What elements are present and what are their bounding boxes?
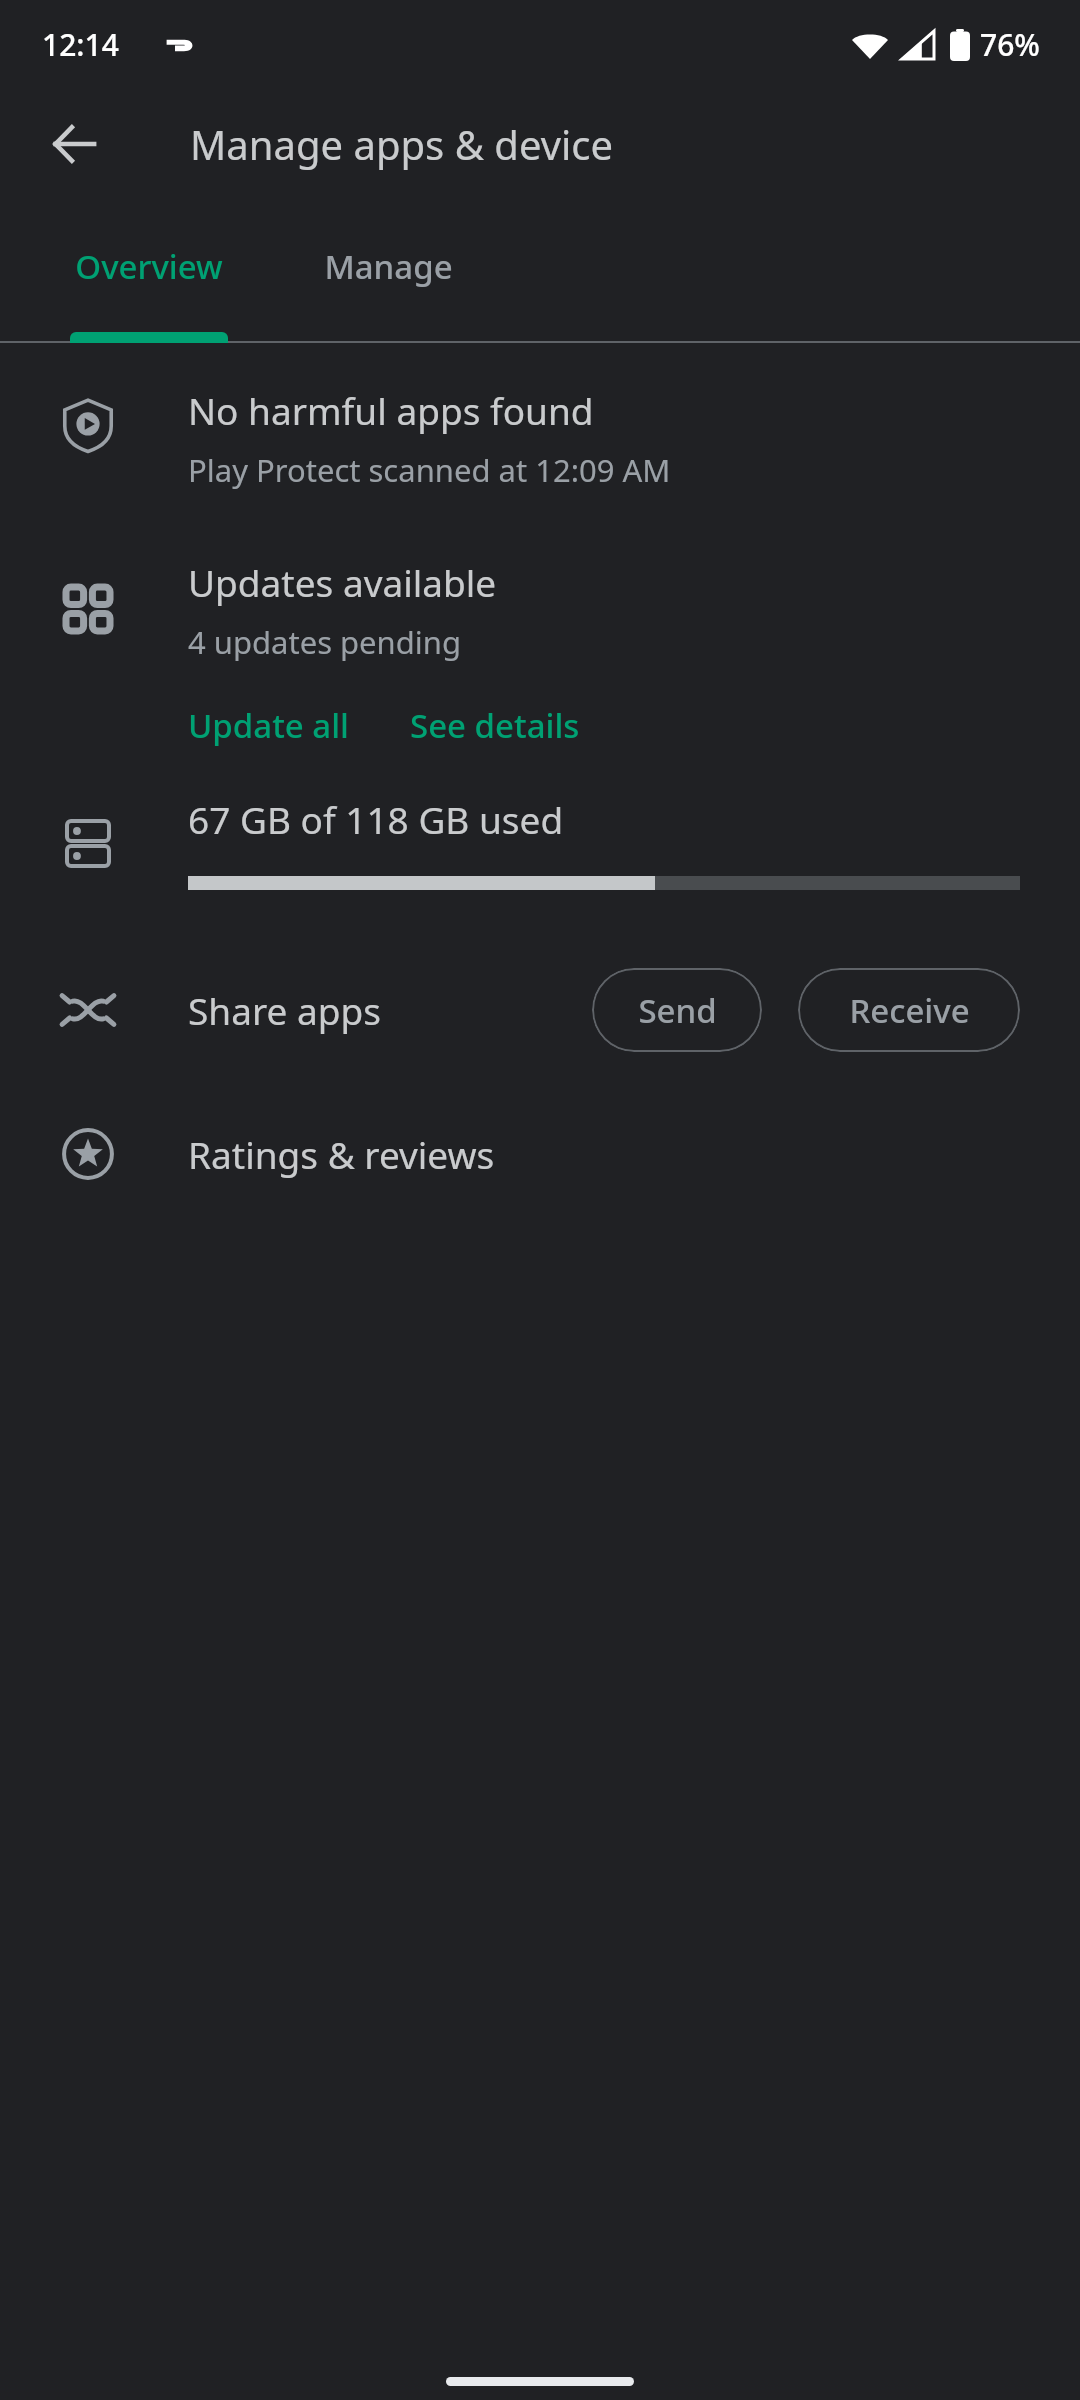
button[interactable]: 67 GB of 118 GB used <box>0 794 1080 890</box>
staticText: 76% <box>980 24 1040 65</box>
button[interactable]: Manage <box>278 200 498 332</box>
staticText: Share apps <box>188 985 381 1035</box>
staticText: Update all <box>188 703 350 748</box>
staticText: Overview <box>75 244 223 289</box>
staticText: Manage apps & device <box>190 117 614 171</box>
button[interactable]: Ratings & reviews <box>0 1114 1080 1194</box>
staticText: 4 updates pending <box>188 621 462 663</box>
staticText: Ratings & reviews <box>188 1129 495 1179</box>
button[interactable]: Back <box>26 96 122 192</box>
button[interactable]: Overview <box>20 200 278 332</box>
staticText: 12:14 <box>42 24 119 65</box>
staticText: Manage <box>324 244 453 289</box>
staticText: Receive <box>849 988 970 1033</box>
button[interactable]: Receive <box>798 968 1020 1052</box>
staticText: Send <box>638 988 717 1033</box>
staticText: Play Protect scanned at 12:09 AM <box>188 449 671 491</box>
button[interactable]: See details <box>410 699 580 752</box>
button[interactable]: Updates available <box>188 557 497 607</box>
staticText: See details <box>410 703 580 748</box>
staticText: No harmful apps found <box>188 385 594 435</box>
staticText: 67 GB of 118 GB used <box>188 794 564 844</box>
button[interactable]: No harmful apps found <box>0 387 1080 513</box>
button[interactable]: Send <box>592 968 762 1052</box>
button[interactable]: Update all <box>188 699 350 752</box>
